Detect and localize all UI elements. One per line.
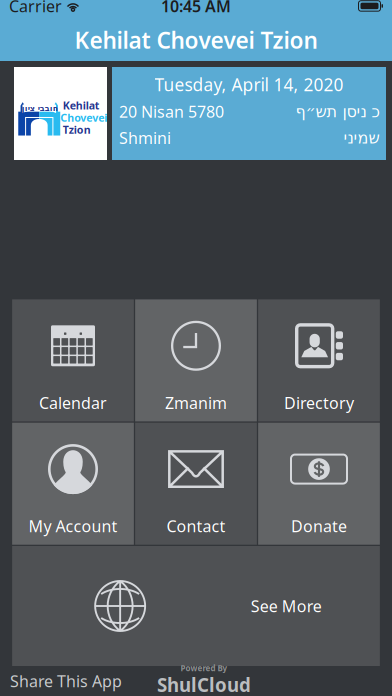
staticText: Chovevei bbox=[60, 110, 107, 125]
staticText: Zmanim bbox=[165, 392, 227, 413]
staticText: ShulCloud bbox=[157, 672, 251, 696]
staticText: Directory bbox=[284, 392, 354, 413]
staticText: Carrier bbox=[9, 0, 62, 16]
button[interactable]: Share This App bbox=[10, 670, 122, 692]
button[interactable]: Calendar bbox=[12, 299, 134, 421]
staticText: 20 Nisan 5780 bbox=[119, 101, 224, 122]
staticText: Kehilat bbox=[63, 98, 100, 112]
staticText: My Account bbox=[28, 515, 117, 537]
button[interactable]: Contact bbox=[135, 423, 257, 545]
staticText: Tzion bbox=[63, 123, 91, 137]
staticText: Powered By bbox=[180, 663, 227, 673]
staticText: Calendar bbox=[39, 392, 107, 413]
staticText: See More bbox=[251, 595, 322, 617]
staticText: Shmini bbox=[119, 127, 171, 148]
staticText: 10:45 AM bbox=[161, 0, 231, 16]
button[interactable]: My Account bbox=[12, 423, 134, 545]
button[interactable]: Directory bbox=[258, 299, 380, 421]
staticText: חובבי ציון bbox=[21, 104, 57, 113]
button[interactable]: Donate bbox=[258, 423, 380, 545]
staticText: Tuesday, April 14, 2020 bbox=[154, 73, 343, 96]
button[interactable]: See More bbox=[12, 546, 380, 666]
staticText: Share This App bbox=[10, 670, 122, 692]
staticText: Kehilat Chovevei Tzion bbox=[74, 25, 317, 55]
staticText: Contact bbox=[166, 515, 225, 537]
button[interactable]: Zmanim bbox=[135, 299, 257, 421]
staticText: שמיני bbox=[343, 129, 379, 147]
staticText: Donate bbox=[291, 515, 347, 537]
staticText: כ ניסן תש״ף bbox=[295, 103, 379, 121]
